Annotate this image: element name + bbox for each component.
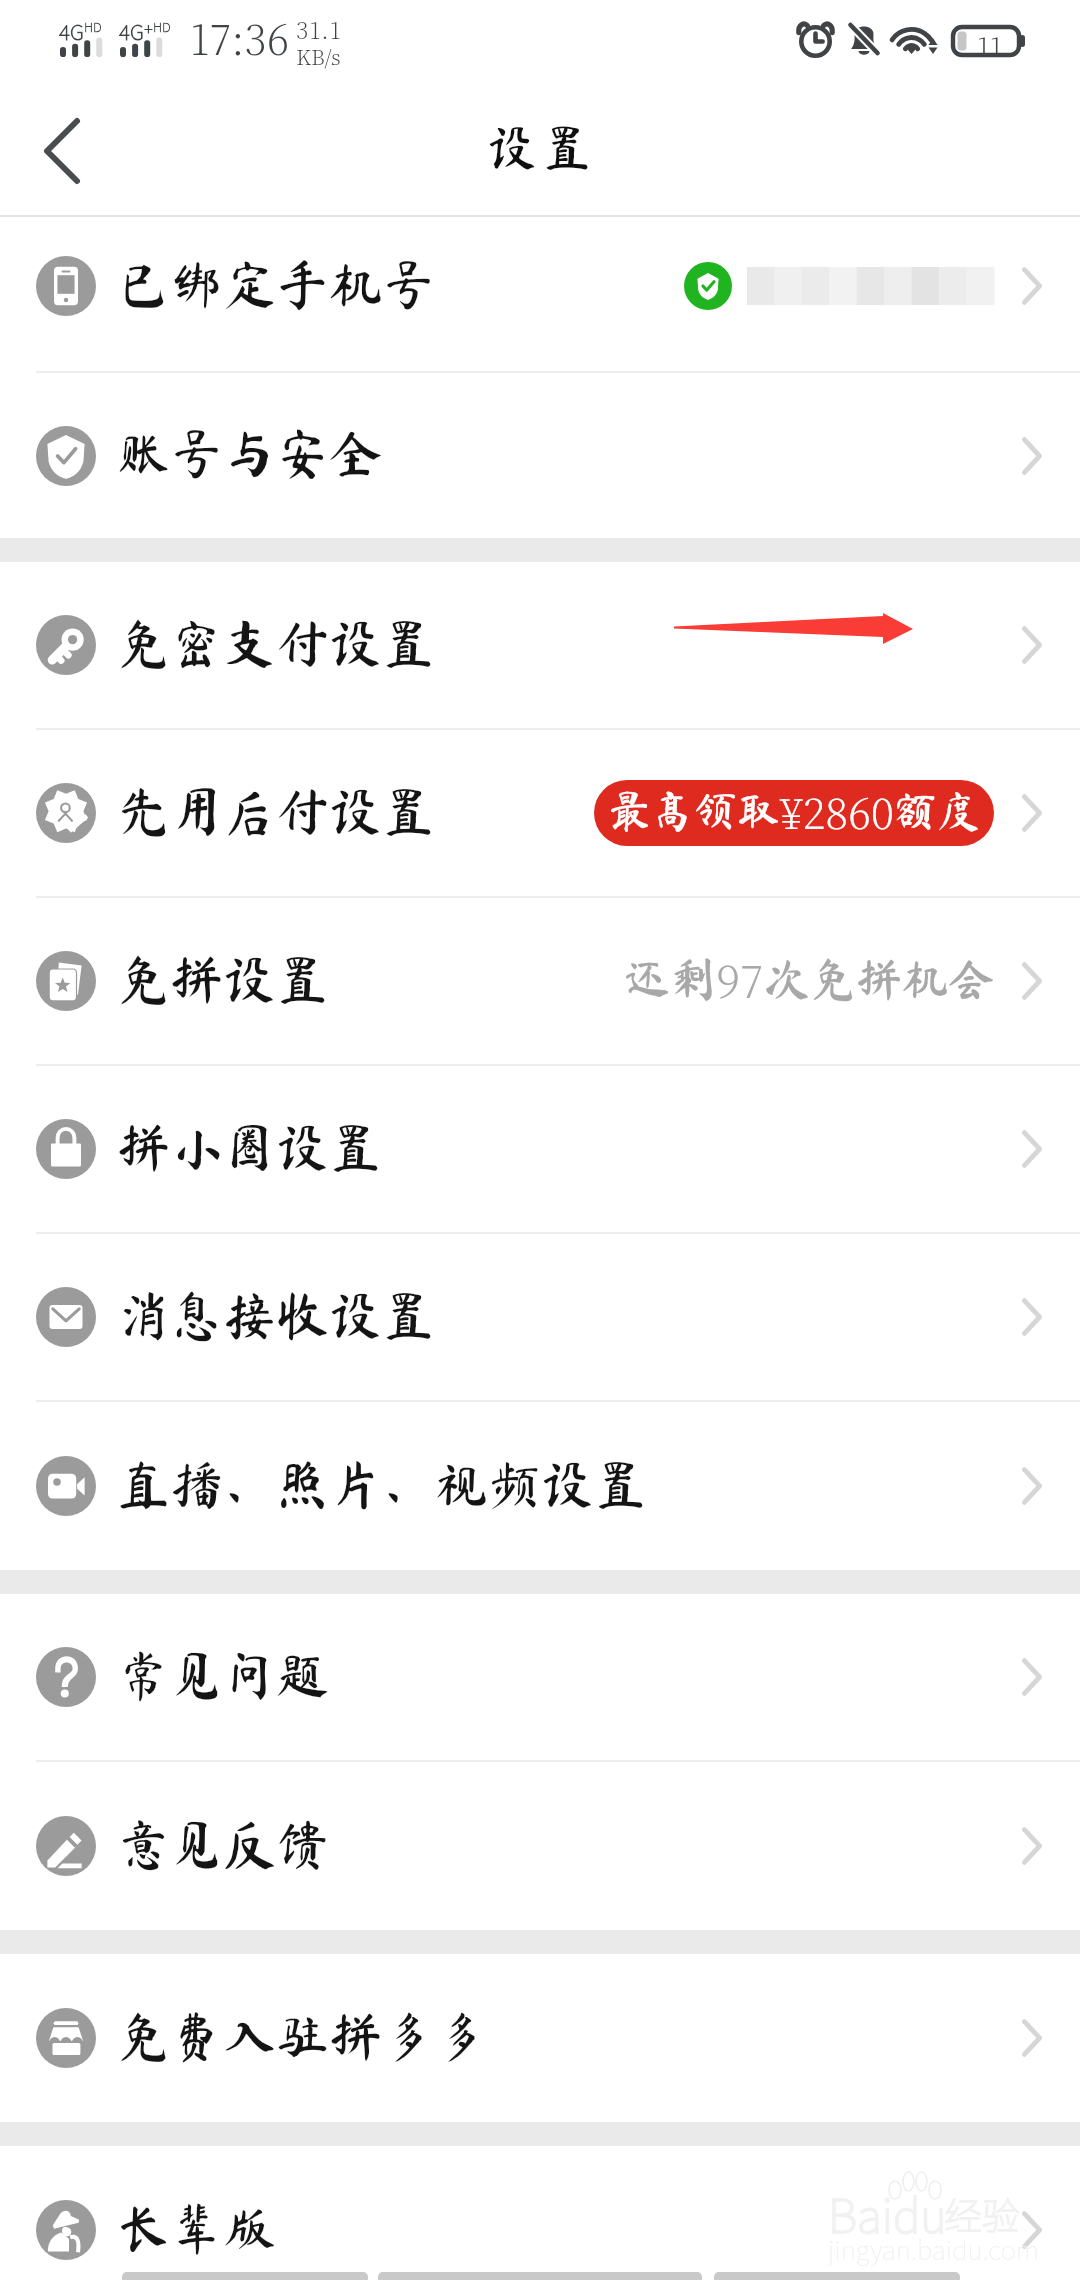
staticText: HD (84, 17, 102, 36)
button[interactable]: 免拼设置 (0, 898, 1080, 1064)
button[interactable]: 长辈版 (0, 2146, 1080, 2280)
staticText: 常见问题 (117, 1648, 329, 1701)
staticText: 免费入驻拼多多 (117, 2009, 488, 2062)
staticText: 意见反馈 (117, 1817, 329, 1870)
staticText: 31.1 (296, 13, 342, 46)
button[interactable]: 常见问题 (0, 1594, 1080, 1760)
button[interactable]: 直播、照片、视频设置 (0, 1402, 1080, 1570)
button[interactable]: Back (0, 105, 120, 215)
staticText: 账号与安全 (117, 426, 382, 479)
staticText: 额度 (894, 789, 980, 832)
staticText: 最高领取 (608, 789, 780, 832)
staticText: Baidu (828, 2180, 947, 2247)
staticText: 4G (59, 16, 84, 46)
staticText: KB/s (296, 41, 341, 71)
staticText: 直播、照片、视频设置 (117, 1457, 647, 1510)
staticText: 免密支付设置 (117, 616, 435, 669)
button[interactable]: 先用后付设置 (0, 730, 1080, 896)
staticText: 长辈版 (117, 2201, 276, 2254)
staticText: 设置 (487, 122, 597, 172)
button[interactable]: 账号与安全 (0, 373, 1080, 538)
staticText: 消息接收设置 (117, 1288, 435, 1341)
button[interactable]: 意见反馈 (0, 1762, 1080, 1930)
staticText: HD (153, 17, 171, 36)
staticText: 11 (977, 26, 1003, 62)
staticText: 已绑定手机号 (117, 257, 435, 310)
button[interactable]: 已绑定手机号 (0, 217, 1080, 371)
staticText: 拼小圈设置 (117, 1120, 382, 1173)
staticText: jingyan.baidu.com (828, 2230, 1039, 2268)
button[interactable]: 消息接收设置 (0, 1234, 1080, 1400)
staticText: 经验 (944, 2186, 1021, 2241)
staticText: 免拼设置 (117, 952, 329, 1005)
staticText: 先用后付设置 (117, 784, 435, 837)
button[interactable]: 免费入驻拼多多 (0, 1954, 1080, 2122)
staticText: 4G (119, 16, 144, 46)
staticText: ¥2860 (780, 781, 894, 841)
staticText: 97 (716, 947, 764, 1010)
staticText: 次免拼机会 (764, 956, 994, 1002)
staticText: 还剩 (624, 956, 716, 1002)
staticText: + (144, 16, 153, 41)
button[interactable]: 免密支付设置 (0, 562, 1080, 728)
staticText: 17:36 (190, 8, 290, 67)
button[interactable]: 拼小圈设置 (0, 1066, 1080, 1232)
button[interactable]: 最高领取 (594, 780, 994, 846)
